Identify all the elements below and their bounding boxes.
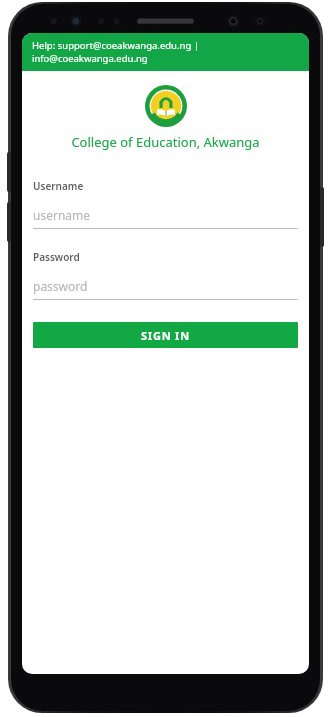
staticText: Username xyxy=(33,179,84,193)
staticText: username xyxy=(33,207,91,223)
button[interactable]: Username xyxy=(33,179,298,229)
staticText: password xyxy=(33,278,88,294)
staticText: College of Education, Akwanga xyxy=(30,133,301,151)
staticText: SIGN IN xyxy=(141,328,190,343)
staticText: Password xyxy=(33,250,80,264)
button[interactable]: Password xyxy=(33,250,298,300)
button[interactable]: SIGN IN xyxy=(33,322,298,348)
staticText: Help: support@coeakwanga.edu.ng | info@c… xyxy=(32,39,199,65)
